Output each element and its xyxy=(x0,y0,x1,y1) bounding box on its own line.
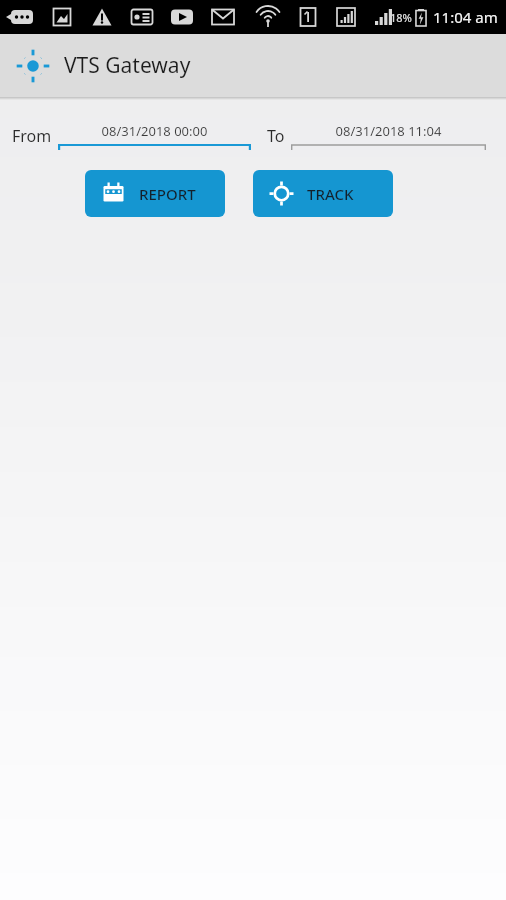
staticText: 08/31/2018 11:04 xyxy=(291,122,486,140)
button[interactable]: To date xyxy=(291,122,486,150)
staticText: VTS Gateway xyxy=(64,51,191,80)
staticText: TRACK xyxy=(307,184,354,204)
staticText: From xyxy=(12,125,52,147)
staticText: To xyxy=(267,125,285,147)
button[interactable]: REPORT xyxy=(85,170,225,217)
staticText: 08/31/2018 00:00 xyxy=(58,122,251,140)
staticText: 11:04 am xyxy=(433,7,498,27)
button[interactable]: From date xyxy=(58,122,251,150)
button[interactable]: TRACK xyxy=(253,170,393,217)
staticText: REPORT xyxy=(139,184,196,204)
staticText: 18% xyxy=(390,10,412,25)
